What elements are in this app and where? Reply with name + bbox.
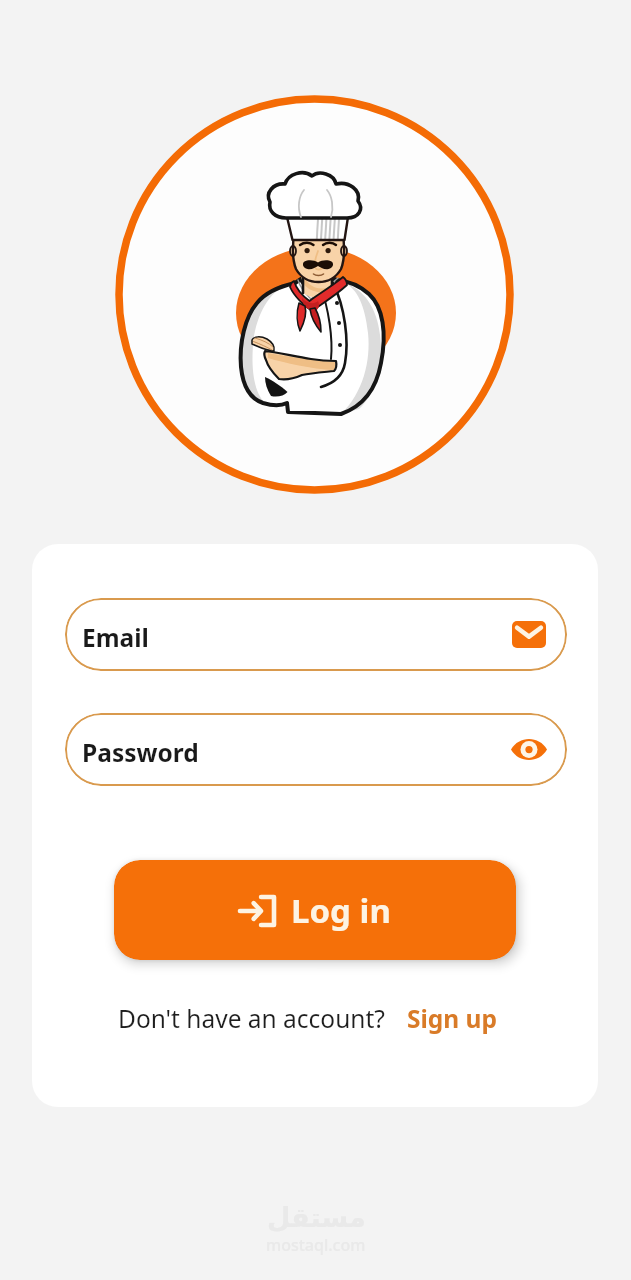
other: Show password xyxy=(511,737,547,762)
staticText: Don't have an account? xyxy=(118,1002,385,1035)
staticText: mostaql.com xyxy=(266,1234,366,1256)
button[interactable]: Sign up xyxy=(407,1002,498,1035)
button[interactable]: Email xyxy=(65,598,567,671)
staticText: Log in xyxy=(291,888,391,933)
staticText: مستقل xyxy=(267,1202,366,1233)
button[interactable]: Log in xyxy=(114,860,516,960)
staticText: Sign up xyxy=(407,1002,498,1035)
staticText: Email xyxy=(82,621,149,654)
staticText: Password xyxy=(82,736,199,769)
button[interactable]: Password xyxy=(65,713,567,786)
